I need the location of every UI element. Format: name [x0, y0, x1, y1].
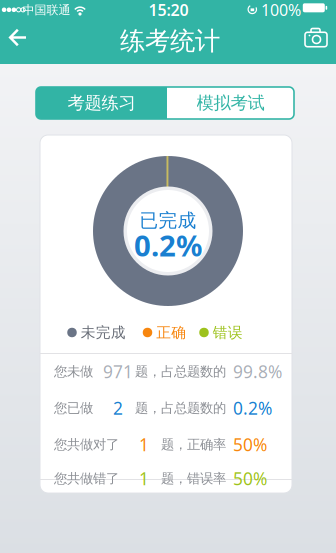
staticText: 50%: [233, 433, 267, 456]
staticText: 题，占总题数的: [135, 363, 226, 380]
staticText: 100%: [261, 0, 301, 20]
staticText: 您未做: [54, 363, 93, 380]
staticText: 1: [139, 467, 149, 490]
staticText: 考题练习: [67, 92, 135, 114]
button[interactable]: 模拟考试: [167, 87, 294, 119]
staticText: 1: [139, 433, 149, 456]
staticText: 正确: [156, 323, 186, 341]
staticText: 0.2%: [233, 396, 272, 419]
staticText: 错误: [213, 323, 243, 341]
button[interactable]: Camera: [296, 21, 336, 55]
staticText: 题，正确率: [161, 436, 226, 453]
staticText: 已完成: [139, 209, 196, 232]
staticText: 50%: [233, 467, 267, 490]
button[interactable]: 考题练习: [36, 87, 167, 119]
staticText: 中国联通: [22, 3, 70, 17]
staticText: 您共做对了: [54, 436, 119, 453]
staticText: 您已做: [54, 400, 93, 416]
staticText: 971: [103, 360, 133, 383]
staticText: 题，占总题数的: [135, 400, 226, 416]
staticText: 您共做错了: [54, 470, 119, 487]
staticText: 题，错误率: [161, 470, 226, 487]
staticText: 未完成: [81, 323, 126, 341]
staticText: 15:20: [148, 0, 188, 20]
staticText: 模拟考试: [196, 92, 264, 114]
button[interactable]: Back: [0, 19, 35, 55]
staticText: 99.8%: [233, 360, 282, 383]
staticText: 练考统计: [120, 25, 220, 56]
staticText: 0.2%: [134, 225, 202, 264]
staticText: 2: [113, 396, 123, 419]
